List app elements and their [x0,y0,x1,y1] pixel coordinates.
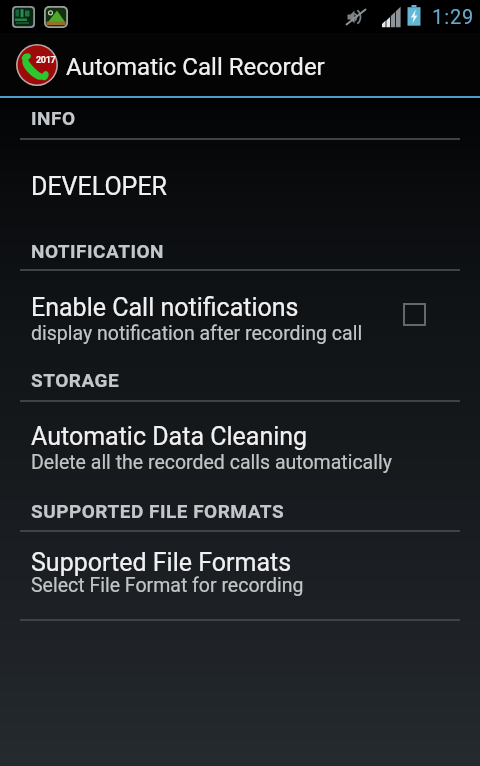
other: Signal strength [382,8,401,28]
staticText: Supported File Formats [31,548,292,577]
other: Silent mode [346,8,367,26]
staticText: INFO [31,107,76,129]
staticText: Delete all the recorded calls automatica… [31,451,392,474]
staticText: Select File Format for recording [31,574,304,597]
staticText: DEVELOPER [31,172,167,201]
button[interactable] [0,529,480,619]
staticText: display notification after recording cal… [31,322,363,345]
staticText: Automatic Data Cleaning [31,422,308,451]
button[interactable]: Enable Call notifications [403,303,426,326]
staticText: NOTIFICATION [31,240,164,262]
staticText: Enable Call notifications [31,293,299,322]
button[interactable] [0,33,480,96]
other: Notification [44,6,68,28]
other: Battery charging [407,5,421,27]
button[interactable] [0,269,480,349]
staticText: STORAGE [31,369,120,391]
staticText: Automatic Call Recorder [66,53,325,81]
other: Notification [12,6,35,28]
staticText: 2017 [36,55,56,66]
staticText: SUPPORTED FILE FORMATS [31,500,285,522]
button[interactable] [0,96,480,177]
staticText: 1:29 [432,5,475,28]
button[interactable] [0,401,480,481]
